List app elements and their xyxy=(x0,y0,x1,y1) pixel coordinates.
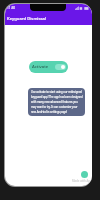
staticText: Activate xyxy=(32,64,49,70)
staticText: Made with Appy Pie xyxy=(72,179,92,183)
staticText: Use activate to start using our redesign… xyxy=(31,90,83,113)
staticText: 11:30 xyxy=(7,6,16,10)
staticText: Keyguard Dismissal xyxy=(7,16,47,22)
button[interactable]: Activate xyxy=(29,61,68,73)
button[interactable]: App badge xyxy=(81,171,88,178)
